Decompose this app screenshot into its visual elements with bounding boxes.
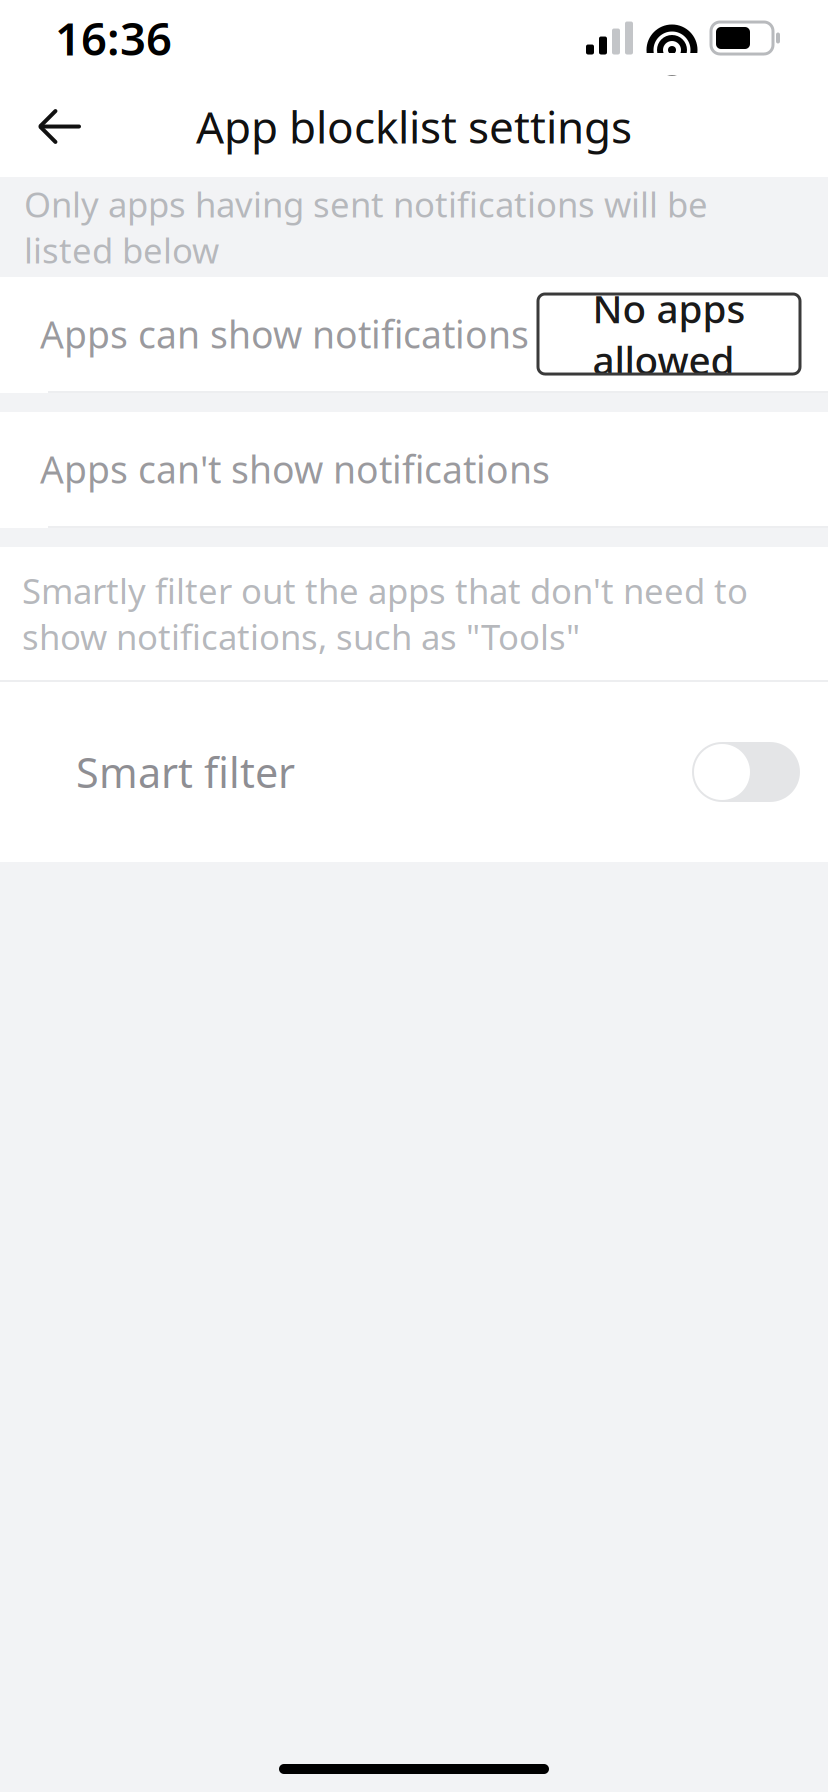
- staticText: 16:36: [55, 8, 172, 68]
- button[interactable]: Back: [14, 80, 106, 172]
- staticText: Smartly filter out the apps that don't n…: [22, 567, 748, 660]
- staticText: Apps can't show notifications: [40, 444, 550, 494]
- staticText: Only apps having sent notifications will…: [24, 181, 708, 273]
- button[interactable]: Apps can't show notifications: [0, 412, 828, 528]
- staticText: Apps can show notifications: [40, 309, 529, 359]
- staticText: No apps allowed: [592, 283, 745, 385]
- button[interactable]: Apps can show notifications: [0, 277, 828, 393]
- staticText: App blocklist settings: [196, 97, 632, 156]
- button[interactable]: Smart filter: [0, 682, 828, 862]
- staticText: Smart filter: [76, 745, 295, 799]
